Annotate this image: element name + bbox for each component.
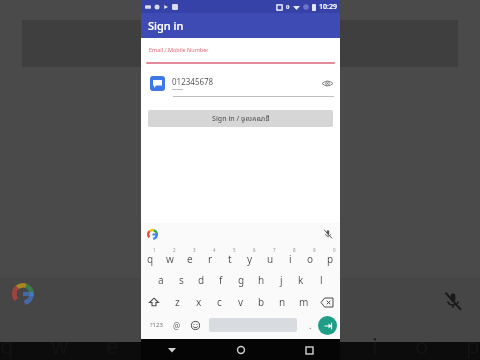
staticText: @	[173, 320, 181, 331]
button[interactable]: Recent apps	[300, 341, 318, 359]
button[interactable]: Voice input off	[323, 229, 333, 239]
staticText: e	[106, 330, 119, 360]
button[interactable]: 3	[180, 245, 200, 268]
staticText: p	[327, 252, 334, 266]
button[interactable]: 2	[160, 245, 180, 268]
button[interactable]: n	[272, 291, 293, 313]
staticText: 3	[193, 247, 196, 253]
button[interactable]: v	[230, 291, 251, 313]
button[interactable]: 0	[320, 245, 340, 268]
button[interactable]: Shift	[141, 291, 167, 313]
button[interactable]: Emoji	[186, 315, 204, 335]
button[interactable]: Home	[232, 341, 250, 359]
staticText: Email / Mobile Number	[149, 46, 209, 53]
staticText: t	[228, 252, 232, 266]
staticText: 4	[213, 247, 216, 253]
staticText: 10:29	[319, 2, 337, 12]
button[interactable]: Back	[163, 341, 181, 359]
button[interactable]: Enter	[318, 316, 337, 335]
staticText: q	[147, 252, 154, 266]
staticText: i	[372, 330, 378, 360]
staticText: x	[196, 295, 202, 309]
staticText: 0	[286, 3, 290, 11]
staticText: w	[166, 252, 174, 266]
other: Messages app	[150, 76, 165, 91]
button[interactable]: Backspace	[314, 291, 340, 313]
button[interactable]: g	[231, 268, 251, 291]
button[interactable]: h	[251, 268, 271, 291]
button[interactable]: 7	[260, 245, 280, 268]
staticText: y	[247, 252, 253, 266]
button[interactable]: Sign in / ចូលគណនី	[148, 110, 333, 127]
button[interactable]: k	[291, 268, 311, 291]
button[interactable]: 5	[220, 245, 240, 268]
staticText: f	[219, 273, 223, 287]
staticText: h	[258, 273, 265, 287]
staticText: l	[320, 273, 323, 287]
button[interactable]: @	[168, 315, 186, 335]
staticText: 7	[273, 247, 276, 253]
button[interactable]: .	[302, 315, 318, 335]
staticText: v	[238, 295, 244, 309]
button[interactable]: 1	[141, 245, 160, 268]
staticText: 2	[173, 247, 176, 253]
button[interactable]: x	[188, 291, 209, 313]
staticText: 012345678	[172, 76, 214, 87]
button[interactable]: z	[167, 291, 188, 313]
staticText: ?123	[150, 321, 163, 329]
button[interactable]: 8	[280, 245, 300, 268]
staticText: k	[298, 273, 304, 287]
staticText: 6	[253, 247, 256, 253]
button[interactable]: j	[271, 268, 291, 291]
staticText: p	[466, 330, 480, 360]
button[interactable]: 4	[200, 245, 220, 268]
staticText: n	[279, 295, 286, 309]
staticText: c	[217, 295, 222, 309]
button[interactable]: ?123	[144, 315, 168, 335]
staticText: d	[198, 273, 205, 287]
staticText: q	[0, 330, 14, 360]
button[interactable]: Messages app	[150, 70, 334, 96]
staticText: a	[158, 273, 164, 287]
staticText: Sign in / ចូលគណនី	[212, 114, 270, 124]
staticText: u	[267, 252, 274, 266]
staticText: s	[179, 273, 184, 287]
staticText: 5	[233, 247, 236, 253]
staticText: b	[258, 295, 265, 309]
staticText: e	[187, 252, 193, 266]
button[interactable]: d	[191, 268, 211, 291]
staticText: .	[309, 319, 312, 331]
staticText: m	[299, 295, 309, 309]
staticText: g	[238, 273, 245, 287]
button[interactable]: s	[171, 268, 191, 291]
staticText: o	[415, 330, 429, 360]
button[interactable]: c	[209, 291, 230, 313]
button[interactable]: Google	[147, 229, 158, 240]
staticText: r	[208, 252, 213, 266]
button[interactable]: l	[311, 268, 331, 291]
staticText: 0	[333, 247, 336, 253]
staticText: z	[175, 295, 180, 309]
button[interactable]: f	[211, 268, 231, 291]
staticText: 1	[153, 247, 156, 253]
staticText: 8	[293, 247, 296, 253]
button[interactable]: m	[293, 291, 314, 313]
staticText: w	[51, 330, 69, 360]
staticText: 9	[313, 247, 316, 253]
button[interactable]: a	[150, 268, 171, 291]
staticText: j	[280, 273, 283, 287]
button[interactable]: Show password	[320, 76, 334, 90]
staticText: o	[307, 252, 314, 266]
button[interactable]: b	[251, 291, 272, 313]
staticText: i	[289, 252, 292, 266]
button[interactable]: 9	[300, 245, 320, 268]
staticText: Sign in	[148, 18, 184, 33]
button[interactable]: 6	[240, 245, 260, 268]
